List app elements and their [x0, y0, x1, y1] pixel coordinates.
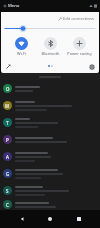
staticText: T — [6, 120, 9, 126]
button[interactable]: T — [0, 114, 100, 131]
staticText: M — [5, 103, 10, 109]
button[interactable]: Home — [43, 212, 57, 226]
button[interactable]: O — [0, 80, 100, 97]
button[interactable]: S — [0, 182, 100, 199]
button[interactable]: C — [0, 199, 100, 210]
button[interactable]: Wi-Fi — [8, 36, 34, 57]
button[interactable]: Brightness — [5, 24, 95, 33]
staticText: Edit connections — [63, 16, 94, 21]
button[interactable]: Edit quick settings — [4, 62, 13, 71]
button[interactable]: Bluetooth — [37, 36, 63, 57]
button[interactable]: G — [0, 165, 100, 182]
button[interactable]: Back — [15, 212, 29, 226]
staticText: G — [6, 171, 10, 177]
staticText: Wi-Fi — [17, 51, 26, 56]
staticText: O — [6, 86, 10, 92]
button[interactable]: M — [0, 97, 100, 114]
staticText: P — [6, 137, 9, 143]
staticText: Power saving — [67, 51, 92, 56]
button[interactable]: P — [0, 131, 100, 148]
staticText: C — [6, 202, 9, 208]
button[interactable]: Power saving — [66, 36, 92, 57]
staticText: Menu — [8, 3, 20, 9]
button[interactable]: Settings — [87, 62, 96, 71]
button[interactable]: A — [0, 148, 100, 165]
staticText: Bluetooth — [41, 51, 60, 56]
staticText: A — [6, 154, 9, 160]
button[interactable]: Recents — [72, 212, 86, 226]
staticText: S — [6, 188, 9, 194]
button[interactable]: Edit connections — [57, 15, 95, 22]
